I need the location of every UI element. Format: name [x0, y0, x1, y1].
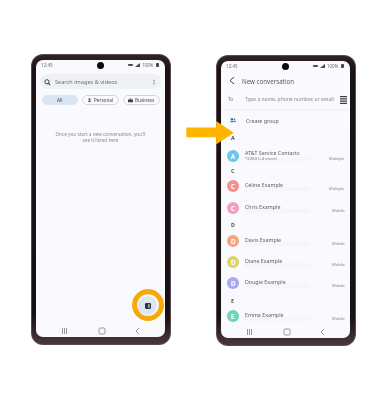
staticText: AT&T Service Contacts	[245, 149, 300, 156]
button[interactable]: C	[221, 198, 350, 218]
staticText: All	[57, 97, 63, 103]
staticText: Create group	[246, 117, 279, 124]
staticText: A	[231, 152, 236, 160]
staticText: Mobile	[332, 208, 345, 213]
staticText: To	[228, 96, 234, 102]
button[interactable]: Create group	[221, 112, 350, 129]
staticText: Business	[135, 97, 155, 103]
staticText: Personal	[94, 97, 114, 103]
staticText: E	[231, 297, 235, 304]
button[interactable]: Search images & videos	[40, 74, 161, 89]
staticText: Chris Example	[245, 203, 281, 210]
staticText: Dougie Example	[245, 278, 286, 285]
staticText: Multiple	[329, 156, 345, 161]
staticText: D	[231, 258, 236, 266]
staticText: 100%	[142, 62, 154, 68]
button[interactable]: Back	[314, 324, 331, 338]
staticText: Diane Example	[245, 257, 283, 264]
button[interactable]: E	[221, 306, 350, 326]
button[interactable]: Recent apps	[241, 324, 258, 338]
staticText: C	[231, 204, 235, 212]
button[interactable]: Home	[93, 323, 110, 337]
staticText: Mobile	[332, 283, 345, 288]
staticText: Once you start a new conversation, you'l…	[36, 131, 165, 143]
staticText: 12:45	[226, 63, 238, 69]
staticText: Emma Example	[245, 311, 284, 318]
button[interactable]: New conversation	[138, 296, 157, 315]
button[interactable]: Home	[278, 324, 295, 338]
button[interactable]: Personal	[82, 95, 119, 105]
staticText: C	[231, 167, 235, 174]
staticText: A	[231, 134, 235, 141]
button[interactable]: C	[221, 176, 350, 196]
staticText: Mobile	[332, 262, 345, 267]
staticText: Type a name, phone number, or email	[245, 96, 334, 103]
button[interactable]: Back	[129, 323, 146, 337]
button[interactable]: All	[42, 95, 78, 105]
staticText: E	[231, 312, 235, 320]
staticText: 12:45	[41, 62, 53, 68]
button[interactable]: A	[221, 146, 350, 166]
button[interactable]: D	[221, 231, 350, 251]
staticText: New conversation	[242, 77, 295, 85]
staticText: D	[231, 237, 236, 245]
staticText: Mobile	[332, 241, 345, 246]
button[interactable]: To	[221, 92, 350, 106]
staticText: 100%	[327, 63, 339, 69]
button[interactable]: D	[221, 273, 350, 293]
staticText: D	[231, 279, 236, 287]
staticText: Mobile	[332, 316, 345, 321]
staticText: Search images & videos	[55, 78, 118, 86]
staticText: *2204 (+4 more)	[245, 156, 277, 162]
button[interactable]: Recent apps	[56, 323, 73, 337]
staticText: Multiple	[329, 186, 345, 191]
staticText: Celine Example	[245, 181, 283, 188]
button[interactable]: Business	[123, 95, 160, 105]
button[interactable]: Keypad	[337, 93, 350, 106]
staticText: C	[231, 182, 235, 190]
staticText: Davis Example	[245, 236, 282, 243]
button[interactable]: Back	[224, 73, 239, 88]
staticText: D	[231, 221, 235, 228]
button[interactable]: D	[221, 252, 350, 272]
